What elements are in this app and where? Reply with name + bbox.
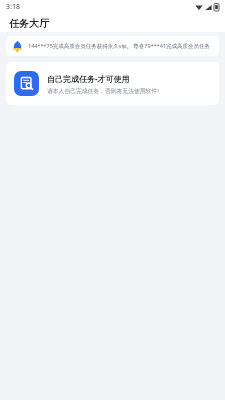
staticText: 任务大厅	[9, 17, 49, 30]
button[interactable]: Notice	[6, 36, 219, 56]
staticText: 自己完成任务-才可使用	[47, 73, 130, 84]
staticText: 144***75完成高质会员任务获得永久vip。 尊喜79***41完成高质会员…	[28, 42, 213, 50]
staticText: 请本人自己完成任务，否则将无法使用软件!	[47, 87, 159, 95]
button[interactable]: 自己完成任务-才可使用	[6, 62, 219, 105]
staticText: 3:18	[6, 2, 20, 12]
other: Notice	[12, 41, 23, 52]
